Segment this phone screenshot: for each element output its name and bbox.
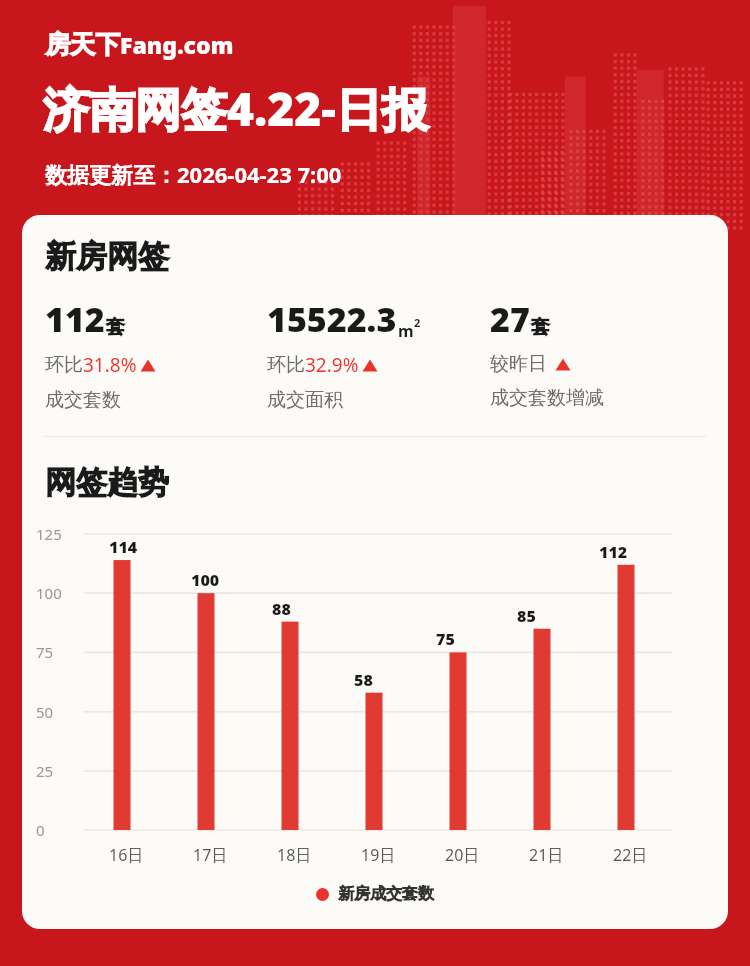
- staticText: 新房成交套数: [338, 884, 434, 904]
- staticText: 22日: [613, 844, 648, 866]
- staticText: 数据更新至：2026-04-23 7:00: [45, 159, 342, 189]
- staticText: 环比: [267, 353, 305, 377]
- staticText: 套: [531, 315, 550, 339]
- staticText: 114: [109, 536, 138, 558]
- staticText: 2: [414, 315, 421, 330]
- staticText: 15522.3: [267, 296, 397, 342]
- button[interactable]: 新房成交套数: [316, 884, 434, 904]
- staticText: 31.8%: [83, 352, 137, 378]
- staticText: 济南网签4.22-日报: [43, 77, 428, 140]
- staticText: m: [398, 320, 414, 342]
- staticText: 112: [45, 296, 105, 342]
- staticText: 成交套数增减: [490, 386, 604, 410]
- staticText: 较昨日: [490, 352, 547, 376]
- staticText: 25: [36, 761, 78, 781]
- staticText: 27: [490, 296, 530, 342]
- staticText: 21日: [529, 844, 564, 866]
- staticText: 成交面积: [267, 388, 343, 412]
- staticText: 85: [517, 605, 536, 627]
- staticText: 网签趋势: [45, 463, 169, 502]
- staticText: 新房网签: [45, 237, 169, 276]
- staticText: 58: [354, 669, 373, 691]
- button[interactable]: 27: [490, 296, 690, 410]
- staticText: 成交套数: [45, 388, 121, 412]
- staticText: 50: [36, 702, 78, 722]
- staticText: 32.9%: [305, 352, 359, 378]
- staticText: 20日: [445, 844, 480, 866]
- staticText: Fang.com: [120, 29, 234, 60]
- staticText: 100: [36, 583, 78, 603]
- staticText: 75: [36, 642, 78, 662]
- staticText: 17日: [193, 844, 228, 866]
- staticText: 套: [106, 315, 125, 339]
- staticText: 18日: [277, 844, 312, 866]
- staticText: 75: [436, 628, 455, 650]
- staticText: 88: [272, 598, 291, 620]
- button[interactable]: 112: [45, 296, 267, 412]
- staticText: 112: [599, 541, 628, 563]
- staticText: 环比: [45, 353, 83, 377]
- staticText: 房天下: [45, 29, 120, 60]
- staticText: 19日: [361, 844, 396, 866]
- button[interactable]: 房天下: [45, 29, 234, 60]
- staticText: 0: [36, 820, 78, 840]
- staticText: 16日: [109, 844, 144, 866]
- staticText: 100: [191, 569, 220, 591]
- staticText: 125: [36, 524, 78, 544]
- button[interactable]: 15522.3: [267, 296, 490, 412]
